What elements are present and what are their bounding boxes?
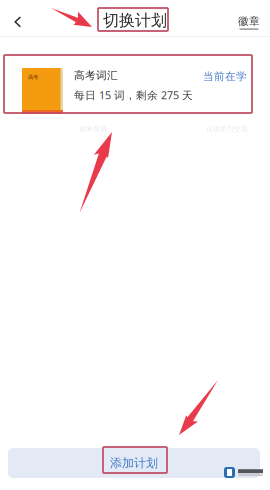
button[interactable]: 徽章 [231,5,267,39]
staticText: 高考词汇 [74,69,118,82]
staticText: 当前在学 [203,70,247,83]
staticText: 切换计划 [103,11,167,30]
staticText: 每日 15 词，剩余 275 天 [74,88,193,102]
staticText: 知米背词 [79,125,107,133]
staticText: 高考 [28,74,38,81]
staticText: 徽章 [238,14,260,28]
button[interactable]: Back [3,5,33,39]
button[interactable]: 高考 [4,55,252,113]
button[interactable]: 添加计划 [8,448,260,478]
staticText: 添加计划 [110,456,158,470]
staticText: 仅供学习交流 [206,125,248,133]
